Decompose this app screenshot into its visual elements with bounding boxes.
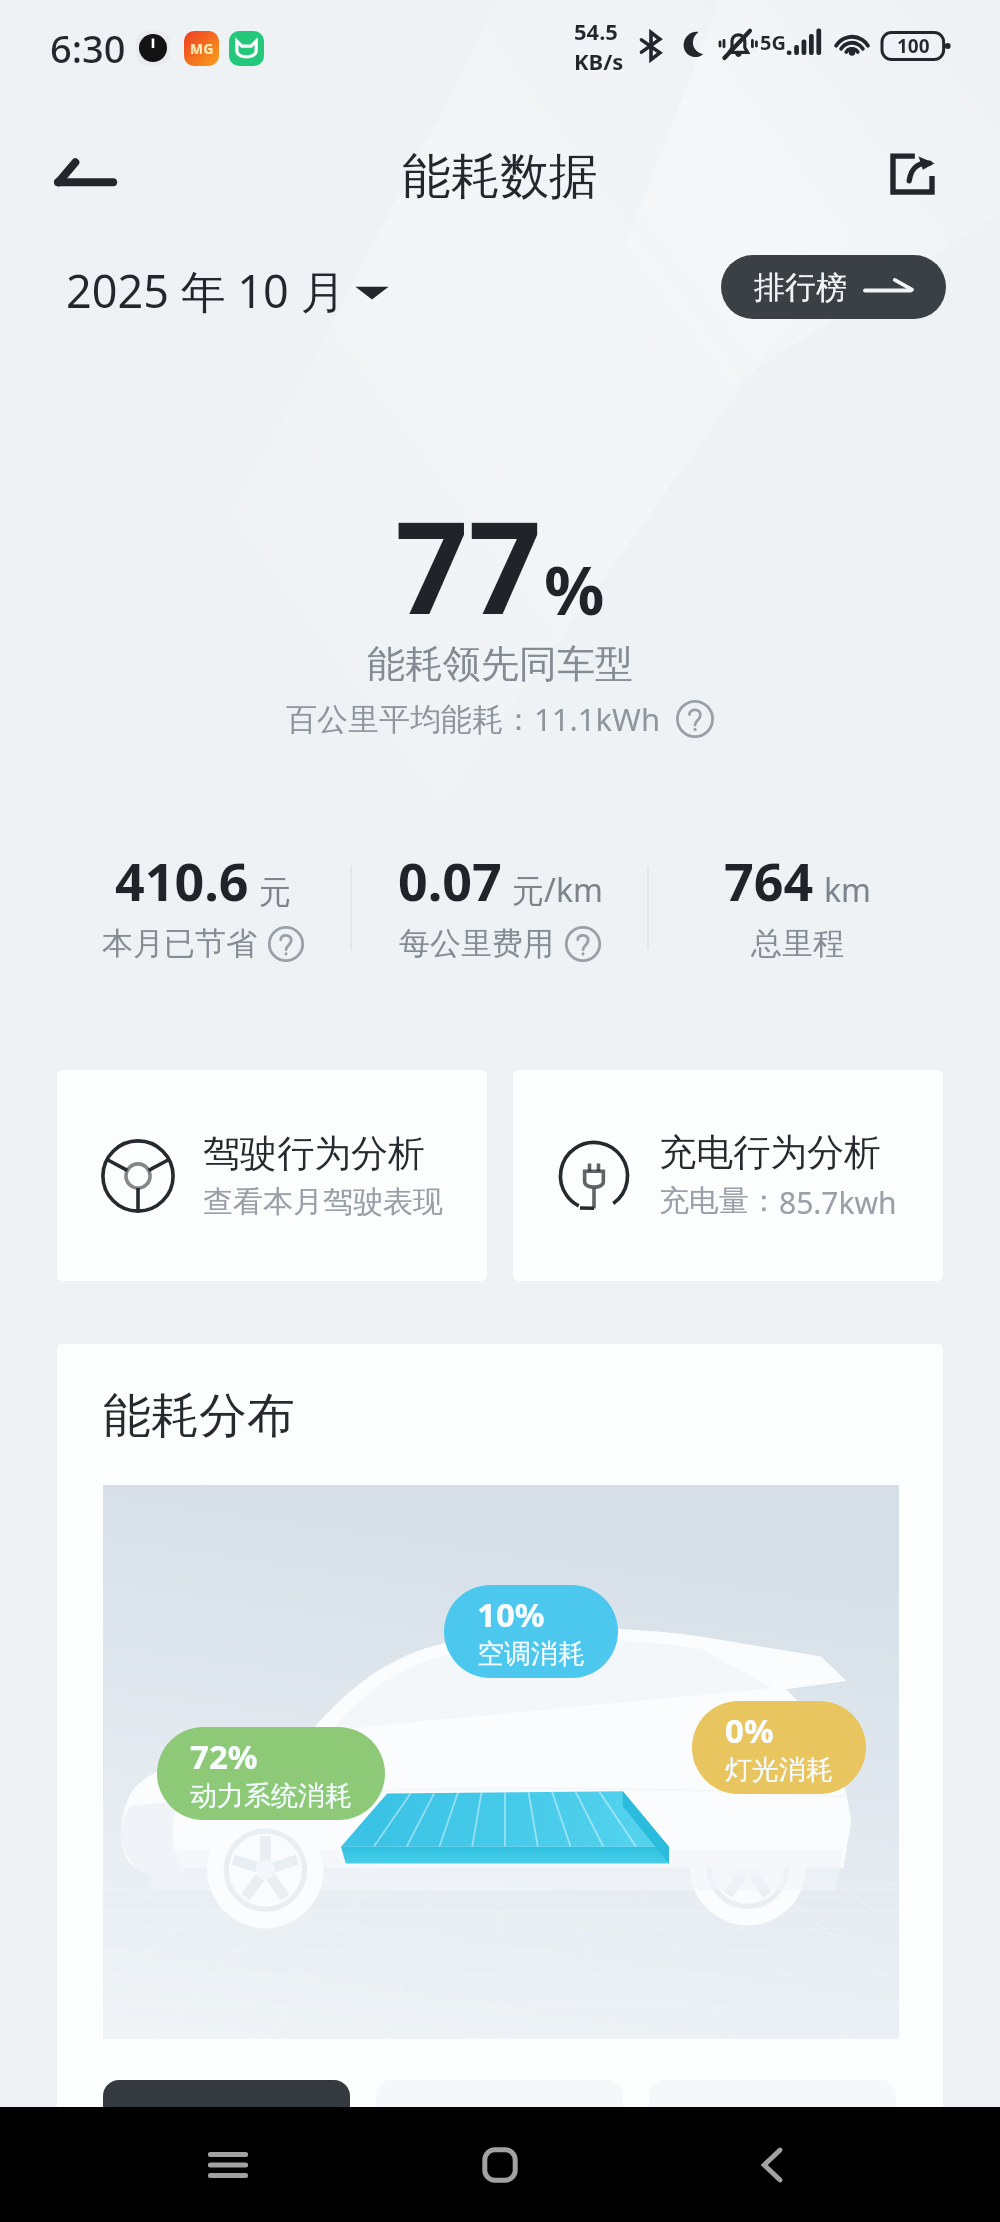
button[interactable]: 灯光消耗 (649, 2080, 896, 2134)
staticText: 5G (760, 29, 786, 56)
staticText: 10% (477, 1592, 545, 1637)
staticText: 本月已节省 (102, 924, 257, 963)
staticText: 动力系统消耗 (137, 2105, 317, 2134)
button[interactable]: 排行榜 (721, 255, 946, 319)
button[interactable]: 动力系统消耗 (103, 2080, 350, 2134)
staticText: 灯光消耗 (725, 1753, 833, 1787)
staticText: 排行榜 (754, 268, 847, 307)
staticText: 能耗领先同车型 (367, 640, 633, 688)
staticText: 充电量： (659, 1182, 779, 1220)
staticText: 灯光消耗 (713, 2105, 833, 2134)
staticText: 每公里费用 (399, 924, 554, 963)
button[interactable]: 0.07 (352, 845, 649, 963)
button[interactable]: 充电行为分析 (513, 1070, 943, 1281)
staticText: 空调消耗 (477, 1637, 585, 1671)
button[interactable]: Back (728, 2120, 818, 2210)
staticText: 查看本月驾驶表现 (203, 1183, 443, 1221)
staticText: 77 (395, 477, 542, 651)
staticText: % (544, 543, 605, 634)
button[interactable]: Recent apps (183, 2120, 273, 2210)
staticText: 0.07 (398, 845, 502, 916)
staticText: 驾驶行为分析 (203, 1130, 425, 1177)
button[interactable]: 驾驶行为分析 (57, 1070, 487, 1281)
staticText: 85.7kwh (779, 1182, 897, 1223)
staticText: 2025 年 10 月 (66, 260, 346, 321)
staticText: 410.6 (115, 845, 249, 916)
button[interactable]: Share (876, 138, 948, 210)
staticText: 元 (259, 872, 291, 912)
staticText: 元/km (512, 868, 603, 912)
staticText: 百公里平均能耗： (286, 700, 534, 739)
staticText: 0% (725, 1708, 774, 1753)
button[interactable]: 410.6 (54, 845, 352, 963)
button[interactable]: Back (46, 138, 122, 214)
staticText: 能耗分布 (103, 1386, 295, 1446)
staticText: MG (190, 39, 214, 58)
staticText: 764 (724, 845, 814, 916)
button[interactable]: Home (455, 2120, 545, 2210)
staticText: 动力系统消耗 (190, 1779, 352, 1813)
staticText: 100 (897, 33, 930, 59)
button[interactable]: 764 (649, 845, 946, 963)
staticText: km (824, 868, 872, 912)
staticText: 总里程 (751, 924, 844, 963)
staticText: 能耗数据 (402, 146, 598, 208)
button[interactable]: 2025 年 10 月 (66, 260, 390, 321)
staticText: 11.1kWh (534, 698, 661, 740)
staticText: 54.5 (574, 16, 618, 46)
staticText: 充电行为分析 (659, 1129, 881, 1176)
staticText: 空调消耗 (440, 2105, 560, 2134)
button[interactable]: 空调消耗 (376, 2080, 623, 2134)
staticText: 72% (190, 1734, 258, 1779)
staticText: KB/s (574, 46, 624, 76)
staticText: 6:30 (50, 22, 126, 74)
